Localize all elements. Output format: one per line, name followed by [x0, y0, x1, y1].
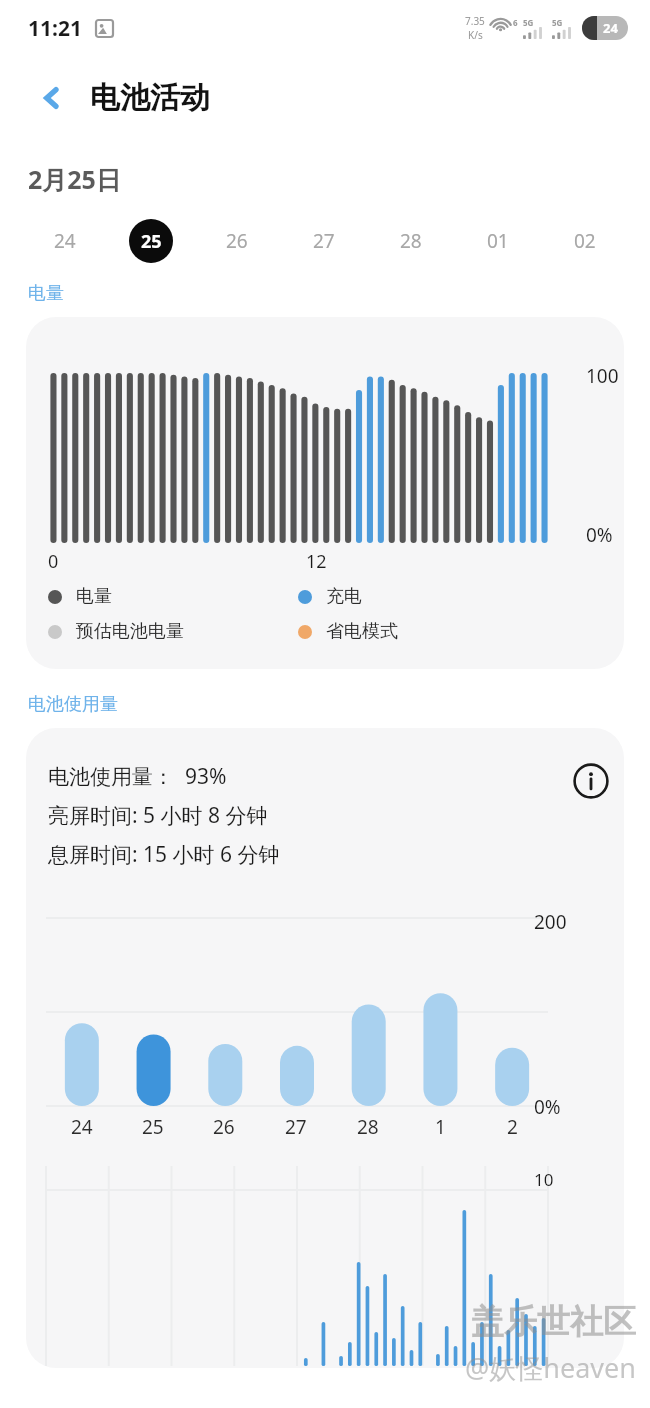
- staticText: 电池活动: [90, 79, 210, 117]
- staticText: 24: [54, 228, 76, 254]
- staticText: 2月25日: [28, 162, 121, 196]
- staticText: 11:21: [28, 14, 82, 43]
- staticText: 25: [142, 1114, 164, 1140]
- staticText: 6: [513, 17, 518, 28]
- button[interactable]: 24: [22, 218, 108, 264]
- staticText: 5G: [523, 17, 534, 28]
- staticText: 预估电池电量: [76, 620, 184, 643]
- staticText: 充电: [326, 585, 362, 608]
- staticText: 28: [400, 228, 422, 254]
- staticText: 省电模式: [326, 620, 398, 643]
- staticText: 27: [313, 228, 335, 254]
- staticText: 1: [435, 1114, 446, 1140]
- staticText: 0%: [534, 1094, 561, 1120]
- button[interactable]: 返回: [26, 72, 78, 124]
- button[interactable]: 27: [280, 218, 367, 264]
- staticText: 02: [574, 228, 596, 254]
- staticText: 24: [71, 1114, 93, 1140]
- staticText: 0: [48, 549, 59, 574]
- staticText: 0%: [586, 522, 613, 548]
- button[interactable]: 28: [367, 218, 454, 264]
- staticText: 7.35: [465, 14, 485, 28]
- staticText: 25: [141, 229, 162, 254]
- staticText: 息屏时间: 15 小时 6 分钟: [48, 840, 280, 869]
- staticText: 200: [534, 909, 567, 935]
- staticText: 01: [487, 228, 509, 254]
- staticText: 26: [226, 228, 248, 254]
- button[interactable]: 25: [108, 218, 194, 264]
- staticText: 电池使用量： 93%: [48, 762, 227, 791]
- button[interactable]: 26: [194, 218, 280, 264]
- staticText: @妖怪heaven: [465, 1349, 636, 1386]
- staticText: 10: [534, 1168, 554, 1191]
- staticText: 27: [285, 1114, 307, 1140]
- staticText: 电池使用量: [28, 693, 118, 716]
- button[interactable]: 信息: [564, 754, 618, 808]
- staticText: 电量: [76, 585, 112, 608]
- staticText: K/s: [468, 28, 483, 42]
- staticText: 亮屏时间: 5 小时 8 分钟: [48, 801, 268, 830]
- staticText: 电量: [28, 282, 64, 305]
- staticText: 2: [507, 1114, 518, 1140]
- button[interactable]: 02: [541, 218, 628, 264]
- staticText: 28: [357, 1114, 379, 1140]
- staticText: 100: [586, 363, 619, 389]
- staticText: 24: [603, 19, 618, 37]
- button[interactable]: 01: [454, 218, 541, 264]
- button[interactable]: 100: [26, 317, 624, 669]
- staticText: 5G: [552, 17, 563, 28]
- staticText: 12: [306, 549, 327, 574]
- staticText: 26: [213, 1114, 235, 1140]
- staticText: 盖乐世社区: [471, 1301, 636, 1343]
